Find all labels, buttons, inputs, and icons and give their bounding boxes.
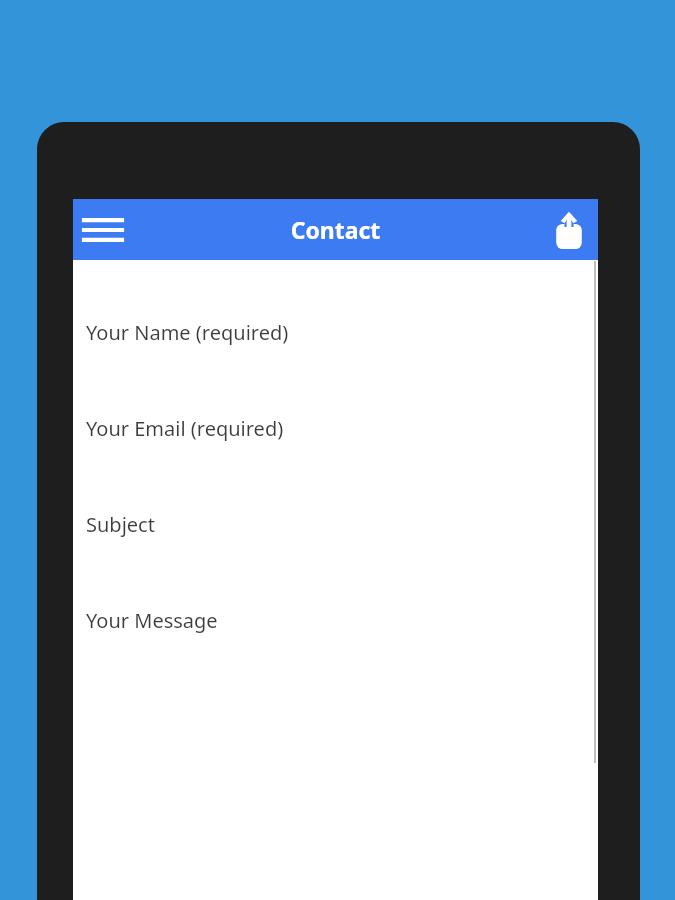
button[interactable]: Your Email (required) [73,404,598,500]
button[interactable]: Your Name (required) [73,308,598,404]
staticText: Your Message [86,607,218,634]
button[interactable]: Subject [73,500,598,596]
staticText: Contact [73,214,598,245]
button[interactable]: Open navigation menu [79,206,127,254]
button[interactable]: Share [544,205,594,255]
button[interactable]: Your Message [73,596,598,692]
staticText: Subject [86,511,155,538]
staticText: Your Email (required) [86,415,284,442]
staticText: Your Name (required) [86,319,289,346]
